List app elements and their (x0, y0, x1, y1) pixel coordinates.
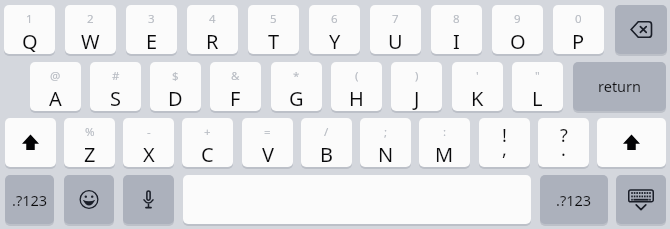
staticText: & (231, 68, 240, 84)
staticText: + (204, 124, 211, 140)
staticText: O (510, 28, 526, 54)
button[interactable]: D (150, 62, 201, 111)
staticText: 3 (148, 11, 155, 27)
staticText: 2 (87, 11, 94, 27)
staticText: V (262, 141, 274, 167)
button[interactable]: Backspace (615, 5, 667, 54)
button[interactable]: K (452, 62, 503, 111)
staticText: % (85, 124, 95, 140)
staticText: @ (50, 68, 61, 84)
button[interactable]: C (182, 118, 233, 167)
button[interactable]: .?123 (540, 175, 608, 224)
button[interactable]: A (30, 62, 81, 111)
staticText: # (112, 68, 120, 84)
staticText: L (532, 85, 543, 111)
staticText: = (264, 124, 271, 140)
staticText: Y (329, 28, 341, 54)
button[interactable]: Z (64, 118, 115, 167)
button[interactable]: E (126, 5, 177, 54)
button[interactable]: L (512, 62, 563, 111)
staticText: .?123 (556, 190, 592, 210)
button[interactable]: H (331, 62, 382, 111)
staticText: : (443, 124, 447, 140)
staticText: * (293, 68, 300, 84)
staticText: / (324, 124, 329, 140)
staticText: Q (22, 28, 38, 54)
button[interactable]: T (248, 5, 299, 54)
staticText: . (561, 137, 566, 162)
staticText: R (206, 28, 219, 54)
staticText: K (471, 85, 484, 111)
staticText: I (453, 28, 460, 54)
staticText: 6 (331, 11, 338, 27)
staticText: 9 (514, 11, 521, 27)
button[interactable]: S (90, 62, 141, 111)
button[interactable]: Hide keyboard (616, 175, 666, 224)
staticText: ) (415, 68, 419, 84)
staticText: return (598, 76, 642, 96)
button[interactable]: N (360, 118, 411, 167)
staticText: X (143, 141, 155, 167)
staticText: D (168, 85, 183, 111)
staticText: 1 (26, 11, 33, 27)
staticText: 8 (453, 11, 460, 27)
button[interactable]: Shift (5, 118, 56, 167)
staticText: C (201, 141, 214, 167)
staticText: P (572, 28, 585, 54)
button[interactable]: ? . (538, 118, 589, 167)
staticText: A (49, 85, 62, 111)
staticText: F (230, 85, 241, 111)
staticText: ! (502, 123, 507, 148)
button[interactable]: G (271, 62, 322, 111)
button[interactable]: R (187, 5, 238, 54)
staticText: J (414, 85, 420, 111)
button[interactable]: Dictation (123, 175, 174, 224)
staticText: ( (355, 68, 359, 84)
button[interactable]: M (419, 118, 470, 167)
button[interactable]: Emoji (64, 175, 114, 224)
staticText: 0 (575, 11, 582, 27)
staticText: ? (560, 123, 568, 148)
button[interactable]: .?123 (5, 175, 54, 224)
staticText: " (535, 68, 540, 84)
staticText: M (435, 141, 454, 167)
staticText: U (388, 28, 403, 54)
staticText: Z (84, 141, 96, 167)
staticText: , (502, 137, 507, 162)
staticText: E (146, 28, 158, 54)
button[interactable]: ! , (479, 118, 530, 167)
staticText: 4 (209, 11, 216, 27)
button[interactable]: P (553, 5, 604, 54)
button[interactable]: O (492, 5, 543, 54)
button[interactable]: return (573, 62, 666, 111)
staticText: T (268, 28, 280, 54)
staticText: - (147, 124, 151, 140)
staticText: 5 (270, 11, 277, 27)
button[interactable]: Y (309, 5, 360, 54)
button[interactable]: U (370, 5, 421, 54)
staticText: N (378, 141, 394, 167)
staticText: $ (172, 68, 179, 84)
button[interactable]: V (242, 118, 293, 167)
staticText: B (320, 141, 333, 167)
button[interactable]: B (301, 118, 352, 167)
staticText: ' (476, 68, 479, 84)
button[interactable]: J (391, 62, 442, 111)
staticText: S (110, 85, 121, 111)
button[interactable]: F (210, 62, 261, 111)
button[interactable]: I (431, 5, 482, 54)
staticText: 7 (392, 11, 399, 27)
staticText: .?123 (12, 190, 48, 210)
button[interactable]: Q (4, 5, 55, 54)
button[interactable]: W (65, 5, 116, 54)
button[interactable]: X (123, 118, 174, 167)
staticText: ; (384, 124, 388, 140)
staticText: H (349, 85, 364, 111)
staticText: W (81, 28, 100, 54)
button[interactable]: Shift (597, 118, 666, 167)
staticText: G (289, 85, 304, 111)
